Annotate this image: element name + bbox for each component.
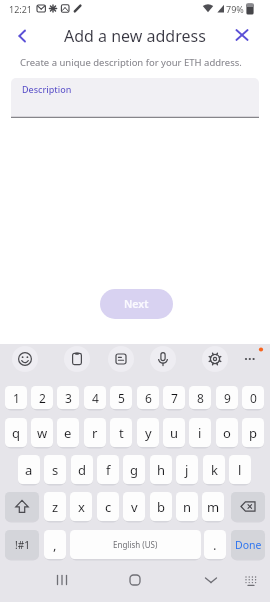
staticText: !#1: [15, 538, 30, 552]
button[interactable]: 7: [163, 386, 185, 409]
button[interactable]: d: [71, 455, 93, 484]
staticText: 9: [224, 390, 231, 406]
button[interactable]: n: [176, 492, 198, 521]
staticText: 5: [118, 390, 125, 406]
staticText: r: [92, 424, 98, 442]
button[interactable]: t: [110, 418, 132, 447]
button[interactable]: a: [18, 455, 40, 484]
button[interactable]: 2: [31, 386, 53, 409]
staticText: l: [238, 461, 242, 479]
button[interactable]: [202, 346, 228, 372]
button[interactable]: Next: [100, 289, 173, 319]
staticText: j: [185, 461, 189, 479]
staticText: z: [52, 498, 59, 516]
button[interactable]: 3: [57, 386, 79, 409]
button[interactable]: 5: [110, 386, 132, 409]
staticText: s: [52, 461, 59, 479]
button[interactable]: [12, 26, 32, 46]
button[interactable]: [240, 346, 266, 372]
button[interactable]: c: [97, 492, 119, 521]
staticText: 6: [145, 390, 152, 406]
staticText: g: [130, 461, 138, 479]
button[interactable]: [64, 346, 90, 372]
staticText: 3: [65, 390, 72, 406]
staticText: ,: [53, 536, 57, 554]
button[interactable]: 0: [242, 386, 264, 409]
button[interactable]: [12, 346, 38, 372]
button[interactable]: f: [97, 455, 119, 484]
button[interactable]: [123, 568, 147, 592]
button[interactable]: 9: [216, 386, 238, 409]
button[interactable]: 8: [189, 386, 211, 409]
button[interactable]: q: [5, 418, 27, 447]
button[interactable]: 4: [84, 386, 106, 409]
button[interactable]: [199, 568, 223, 592]
button[interactable]: [233, 26, 251, 44]
staticText: 1: [13, 390, 20, 406]
button[interactable]: l: [229, 455, 251, 484]
button[interactable]: [108, 346, 134, 372]
staticText: 4: [92, 390, 99, 406]
staticText: t: [119, 424, 124, 442]
button[interactable]: [50, 568, 74, 592]
button[interactable]: r: [84, 418, 106, 447]
button[interactable]: i: [189, 418, 211, 447]
button[interactable]: !#1: [5, 530, 39, 559]
button[interactable]: Description: [11, 78, 259, 118]
staticText: d: [78, 461, 86, 479]
button[interactable]: 6: [137, 386, 159, 409]
staticText: w: [37, 424, 48, 442]
button[interactable]: h: [150, 455, 172, 484]
button[interactable]: w: [31, 418, 53, 447]
button[interactable]: e: [57, 418, 79, 447]
button[interactable]: Done: [231, 530, 265, 559]
button[interactable]: g: [123, 455, 145, 484]
staticText: .: [213, 536, 217, 554]
button[interactable]: [240, 570, 262, 590]
button[interactable]: p: [242, 418, 264, 447]
button[interactable]: b: [150, 492, 172, 521]
staticText: Next: [124, 297, 149, 311]
button[interactable]: y: [137, 418, 159, 447]
staticText: 79%: [226, 3, 244, 15]
staticText: h: [157, 461, 166, 479]
staticText: f: [106, 461, 111, 479]
staticText: u: [170, 424, 179, 442]
button[interactable]: v: [123, 492, 145, 521]
staticText: 12:21: [9, 3, 33, 15]
button[interactable]: k: [203, 455, 225, 484]
staticText: i: [198, 424, 202, 442]
staticText: Description: [22, 83, 72, 95]
button[interactable]: English (US): [70, 530, 201, 559]
staticText: e: [64, 424, 72, 442]
staticText: English (US): [113, 539, 158, 550]
staticText: Create a unique description for your ETH…: [20, 56, 242, 69]
staticText: o: [223, 424, 231, 442]
button[interactable]: m: [202, 492, 224, 521]
staticText: p: [249, 424, 257, 442]
staticText: y: [145, 424, 152, 442]
staticText: 2: [39, 390, 46, 406]
button[interactable]: 1: [5, 386, 27, 409]
staticText: x: [78, 498, 85, 516]
staticText: 7: [171, 390, 178, 406]
button[interactable]: u: [163, 418, 185, 447]
button[interactable]: s: [44, 455, 66, 484]
button[interactable]: z: [44, 492, 66, 521]
staticText: c: [105, 498, 112, 516]
button[interactable]: [5, 492, 39, 521]
button[interactable]: ,: [44, 530, 66, 559]
staticText: q: [12, 424, 20, 442]
staticText: 0: [250, 390, 257, 406]
button[interactable]: x: [70, 492, 92, 521]
staticText: a: [25, 461, 33, 479]
button[interactable]: j: [176, 455, 198, 484]
button[interactable]: .: [204, 530, 226, 559]
staticText: 8: [197, 390, 204, 406]
staticText: b: [157, 498, 165, 516]
button[interactable]: o: [216, 418, 238, 447]
staticText: n: [183, 498, 192, 516]
staticText: v: [131, 498, 138, 516]
button[interactable]: [150, 346, 176, 372]
button[interactable]: [231, 492, 265, 521]
